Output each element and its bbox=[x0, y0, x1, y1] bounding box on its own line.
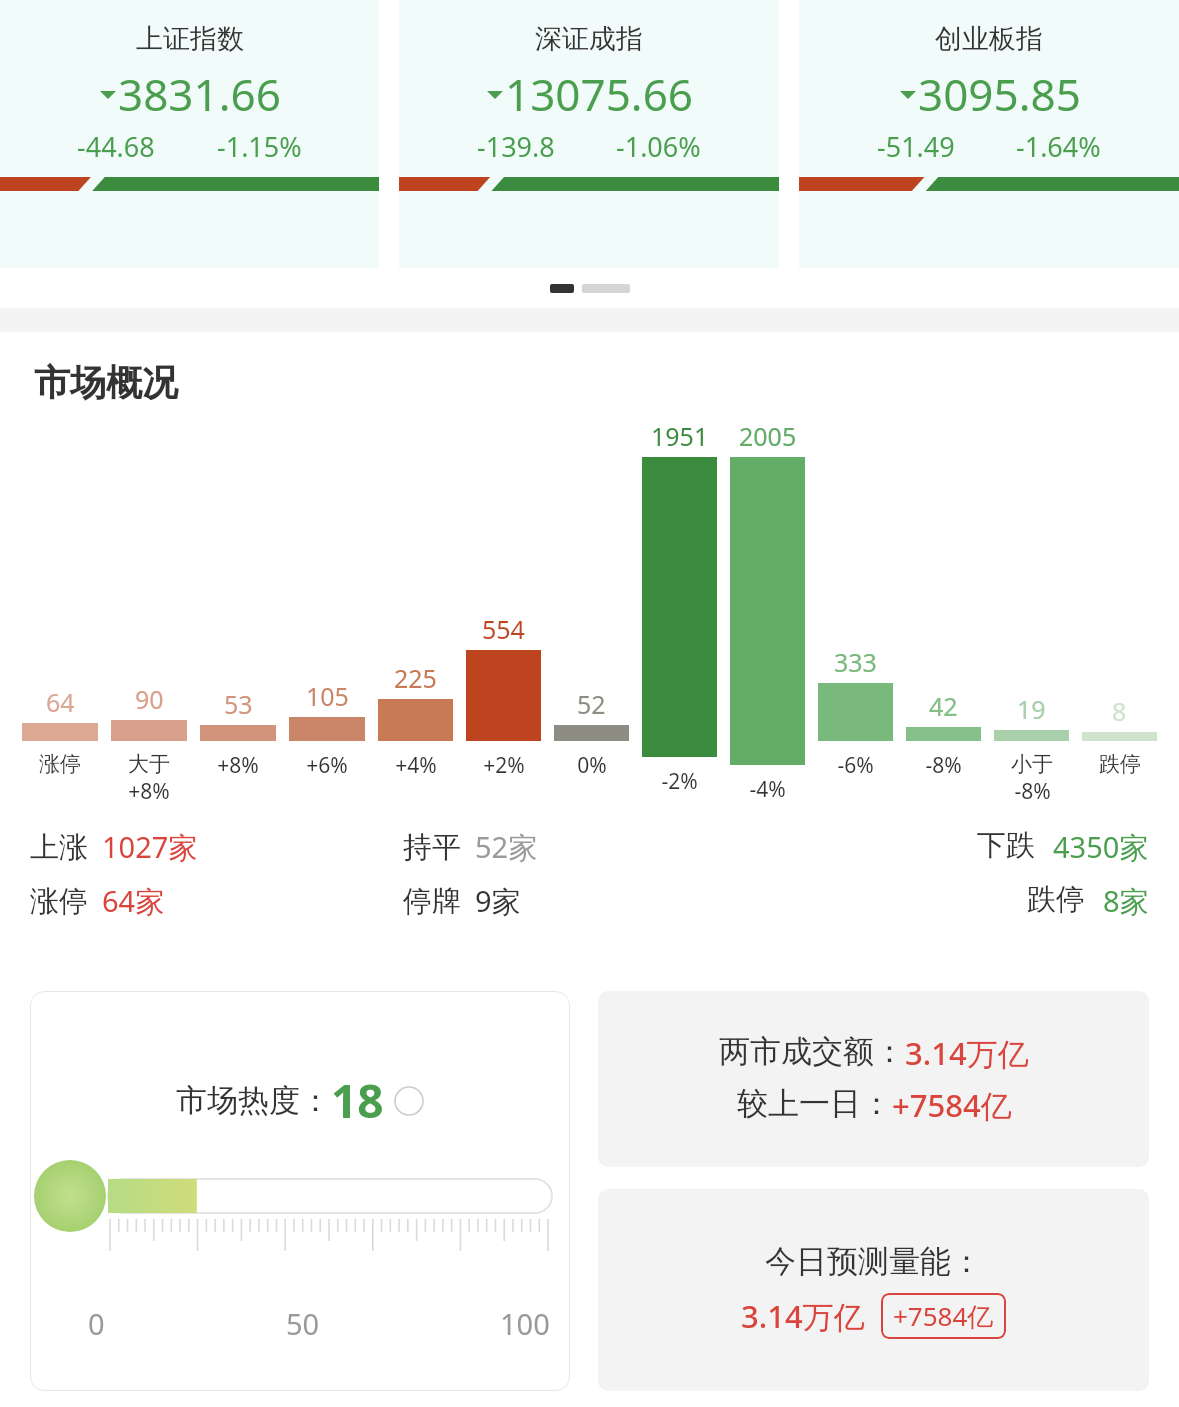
staticText: 上证指数 bbox=[136, 22, 244, 56]
staticText: +8% bbox=[217, 751, 259, 780]
staticText: 3831.66 bbox=[118, 64, 281, 124]
staticText: +2% bbox=[483, 751, 525, 780]
staticText: 停牌 bbox=[403, 883, 461, 920]
staticText: -1.06% bbox=[616, 128, 701, 165]
staticText: 8 bbox=[1112, 694, 1127, 728]
staticText: 深证成指 bbox=[535, 22, 643, 56]
staticText: 创业板指 bbox=[935, 22, 1043, 56]
staticText: -8% bbox=[925, 751, 962, 780]
staticText: 持平 bbox=[403, 829, 461, 866]
staticText: 1951 bbox=[651, 419, 709, 453]
staticText: 64家 bbox=[102, 881, 165, 921]
staticText: 今日预测量能： bbox=[765, 1242, 982, 1281]
staticText: 225 bbox=[394, 661, 437, 695]
staticText: 0% bbox=[577, 751, 607, 780]
staticText: +8% bbox=[128, 777, 170, 806]
staticText: -1.15% bbox=[217, 128, 302, 165]
button[interactable] bbox=[550, 284, 574, 293]
staticText: 0 bbox=[88, 1304, 105, 1343]
staticText: 64 bbox=[46, 685, 75, 719]
staticText: -44.68 bbox=[77, 128, 155, 165]
staticText: 跌停 bbox=[1099, 751, 1141, 777]
staticText: -1.64% bbox=[1016, 128, 1101, 165]
staticText: 19 bbox=[1017, 692, 1046, 726]
button[interactable]: 深证成指 bbox=[399, 0, 779, 268]
staticText: +7584亿 bbox=[892, 1084, 1012, 1126]
staticText: 下跌 bbox=[977, 827, 1035, 864]
staticText: 333 bbox=[834, 645, 877, 679]
staticText: 13075.66 bbox=[505, 64, 693, 124]
staticText: 涨停 bbox=[39, 751, 81, 777]
staticText: -139.8 bbox=[477, 128, 555, 165]
staticText: 涨停 bbox=[30, 883, 88, 920]
staticText: -4% bbox=[749, 775, 786, 804]
staticText: 8家 bbox=[1103, 881, 1149, 921]
staticText: 市场热度： bbox=[176, 1081, 331, 1120]
staticText: 跌停 bbox=[1027, 881, 1085, 918]
staticText: -2% bbox=[661, 767, 698, 796]
staticText: -6% bbox=[837, 751, 874, 780]
other: 说明 bbox=[394, 1086, 424, 1116]
button[interactable]: 两市成交额： bbox=[598, 991, 1149, 1167]
staticText: 50 bbox=[286, 1304, 320, 1343]
staticText: 2005 bbox=[739, 419, 797, 453]
staticText: 较上一日： bbox=[737, 1084, 892, 1123]
staticText: 52家 bbox=[475, 827, 538, 867]
staticText: 小于 bbox=[1011, 751, 1053, 777]
staticText: 两市成交额： bbox=[719, 1032, 905, 1071]
staticText: -8% bbox=[1014, 777, 1051, 806]
staticText: +7584亿 bbox=[893, 1298, 994, 1334]
staticText: 上涨 bbox=[30, 829, 88, 866]
staticText: 3095.85 bbox=[918, 64, 1081, 124]
button[interactable]: 今日预测量能： bbox=[598, 1189, 1149, 1391]
staticText: 9家 bbox=[475, 881, 521, 921]
staticText: -51.49 bbox=[877, 128, 955, 165]
staticText: 3.14万亿 bbox=[741, 1295, 865, 1337]
button[interactable]: 上证指数 bbox=[0, 0, 379, 268]
staticText: 52 bbox=[577, 687, 606, 721]
staticText: 市场概况 bbox=[34, 360, 178, 405]
staticText: 105 bbox=[306, 679, 349, 713]
staticText: 1027家 bbox=[102, 827, 198, 867]
button[interactable]: 创业板指 bbox=[799, 0, 1179, 268]
staticText: 53 bbox=[224, 687, 253, 721]
staticText: +6% bbox=[306, 751, 348, 780]
staticText: 18 bbox=[331, 1069, 384, 1132]
staticText: 90 bbox=[135, 682, 164, 716]
staticText: 大于 bbox=[128, 751, 170, 777]
staticText: 4350家 bbox=[1053, 827, 1149, 867]
button[interactable]: 市场热度： bbox=[30, 991, 570, 1391]
staticText: +4% bbox=[395, 751, 437, 780]
staticText: 554 bbox=[482, 612, 525, 646]
staticText: 42 bbox=[929, 689, 958, 723]
staticText: 3.14万亿 bbox=[905, 1032, 1029, 1074]
staticText: 100 bbox=[500, 1304, 550, 1343]
